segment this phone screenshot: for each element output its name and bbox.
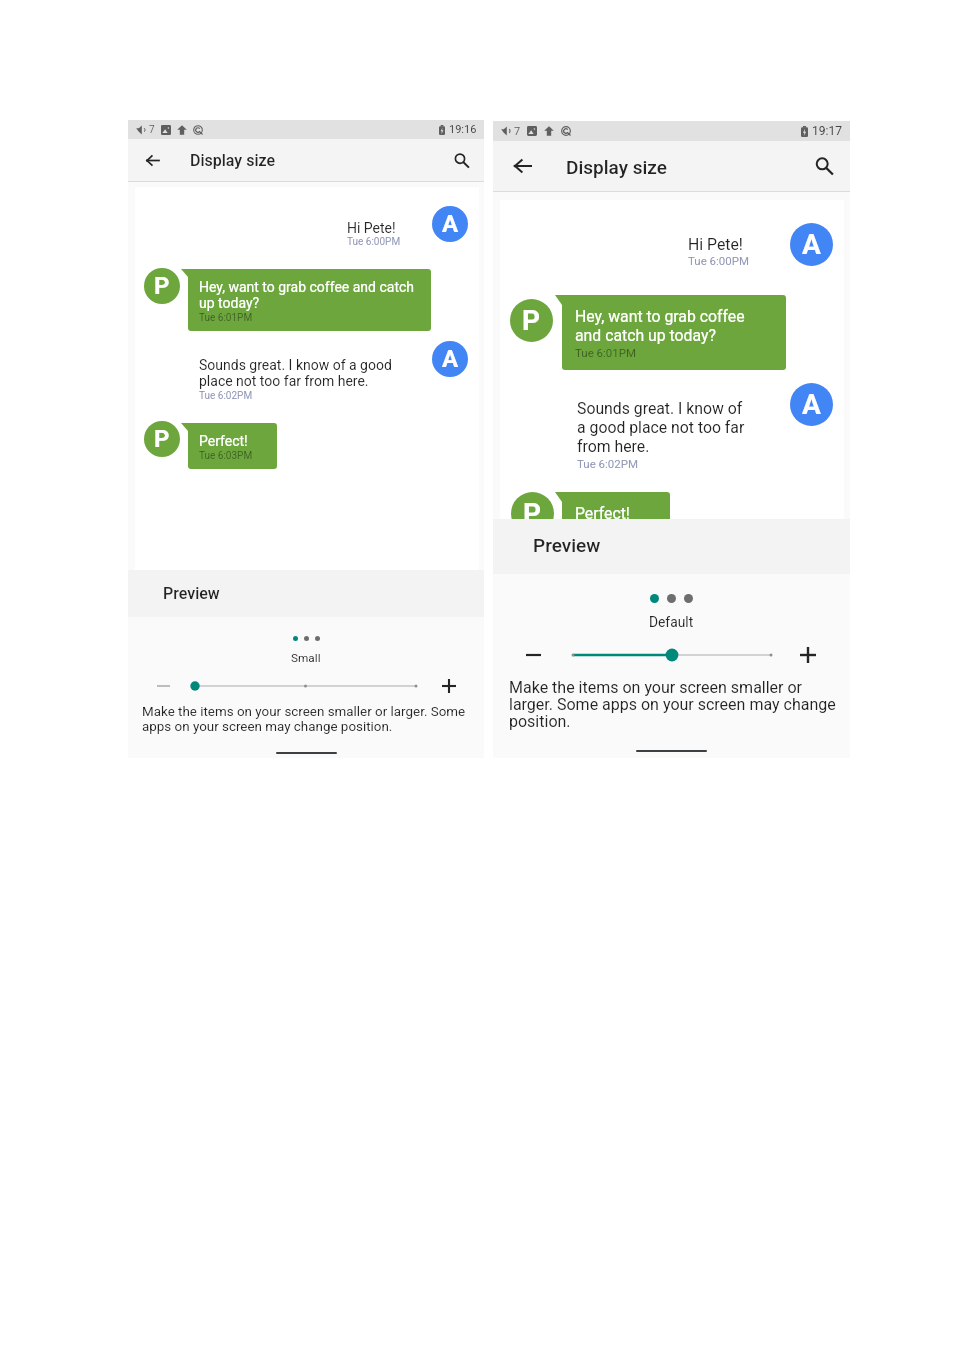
button[interactable]: Preview page: [293, 636, 298, 641]
button[interactable]: Preview page: [684, 594, 693, 603]
button[interactable]: Preview page: [315, 636, 320, 641]
staticText: A: [802, 388, 821, 421]
staticText: a good place not too far: [577, 418, 745, 437]
staticText: Small: [291, 651, 321, 665]
button[interactable]: Preview page: [304, 636, 309, 641]
staticText: 7: [149, 124, 155, 136]
staticText: Perfect!: [199, 433, 248, 449]
staticText: Sounds great. I know of a good: [199, 357, 392, 373]
staticText: Hey, want to grab coffee: [575, 307, 745, 326]
staticText: Preview: [533, 534, 601, 556]
staticText: Tue 6:02PM: [199, 390, 253, 402]
staticText: up today?: [199, 295, 260, 311]
button[interactable]: Preview page: [650, 594, 659, 603]
button[interactable]: Search: [806, 148, 842, 184]
staticText: Perfect!: [575, 504, 630, 523]
staticText: A: [442, 210, 459, 238]
button[interactable]: Back: [504, 148, 540, 184]
staticText: Tue 6:00PM: [347, 236, 401, 248]
staticText: apps on your screen may change position.: [142, 719, 393, 735]
staticText: Hi Pete!: [347, 220, 396, 236]
staticText: A: [442, 345, 459, 373]
button[interactable]: Display size slider: [563, 641, 781, 669]
button[interactable]: Display size slider: [185, 672, 426, 700]
button[interactable]: Decrease display size: [149, 672, 177, 700]
staticText: Display size: [566, 156, 667, 178]
staticText: Tue 6:00PM: [688, 254, 750, 267]
staticText: Hey, want to grab coffee and catch: [199, 279, 415, 295]
staticText: Tue 6:01PM: [575, 346, 637, 359]
staticText: Hi Pete!: [688, 235, 743, 254]
staticText: place not too far from here.: [199, 373, 369, 389]
staticText: from here.: [577, 437, 650, 456]
staticText: Tue 6:02PM: [577, 457, 639, 470]
staticText: Tue 6:01PM: [199, 312, 253, 324]
staticText: P: [522, 304, 541, 337]
staticText: Make the items on your screen smaller or: [509, 678, 803, 697]
staticText: Display size: [190, 151, 275, 170]
staticText: Tue 6:03PM: [199, 450, 253, 462]
staticText: 7: [514, 125, 521, 138]
staticText: position.: [509, 712, 571, 731]
staticText: Preview: [163, 584, 220, 603]
staticText: 19:16: [449, 123, 477, 136]
button[interactable]: Search: [443, 142, 479, 178]
button[interactable]: Increase display size: [435, 672, 463, 700]
staticText: P: [154, 425, 170, 453]
staticText: Default: [649, 614, 694, 630]
staticText: P: [154, 272, 170, 300]
button[interactable]: Increase display size: [794, 641, 822, 669]
staticText: P: [523, 497, 542, 530]
button[interactable]: Back: [134, 142, 170, 178]
staticText: 19:17: [812, 124, 843, 138]
button[interactable]: Decrease display size: [519, 641, 547, 669]
staticText: A: [802, 228, 821, 261]
staticText: and catch up today?: [575, 326, 716, 345]
staticText: Sounds great. I know of: [577, 399, 743, 418]
button[interactable]: Preview page: [667, 594, 676, 603]
staticText: larger. Some apps on your screen may cha…: [509, 695, 836, 714]
staticText: Make the items on your screen smaller or…: [142, 704, 466, 720]
